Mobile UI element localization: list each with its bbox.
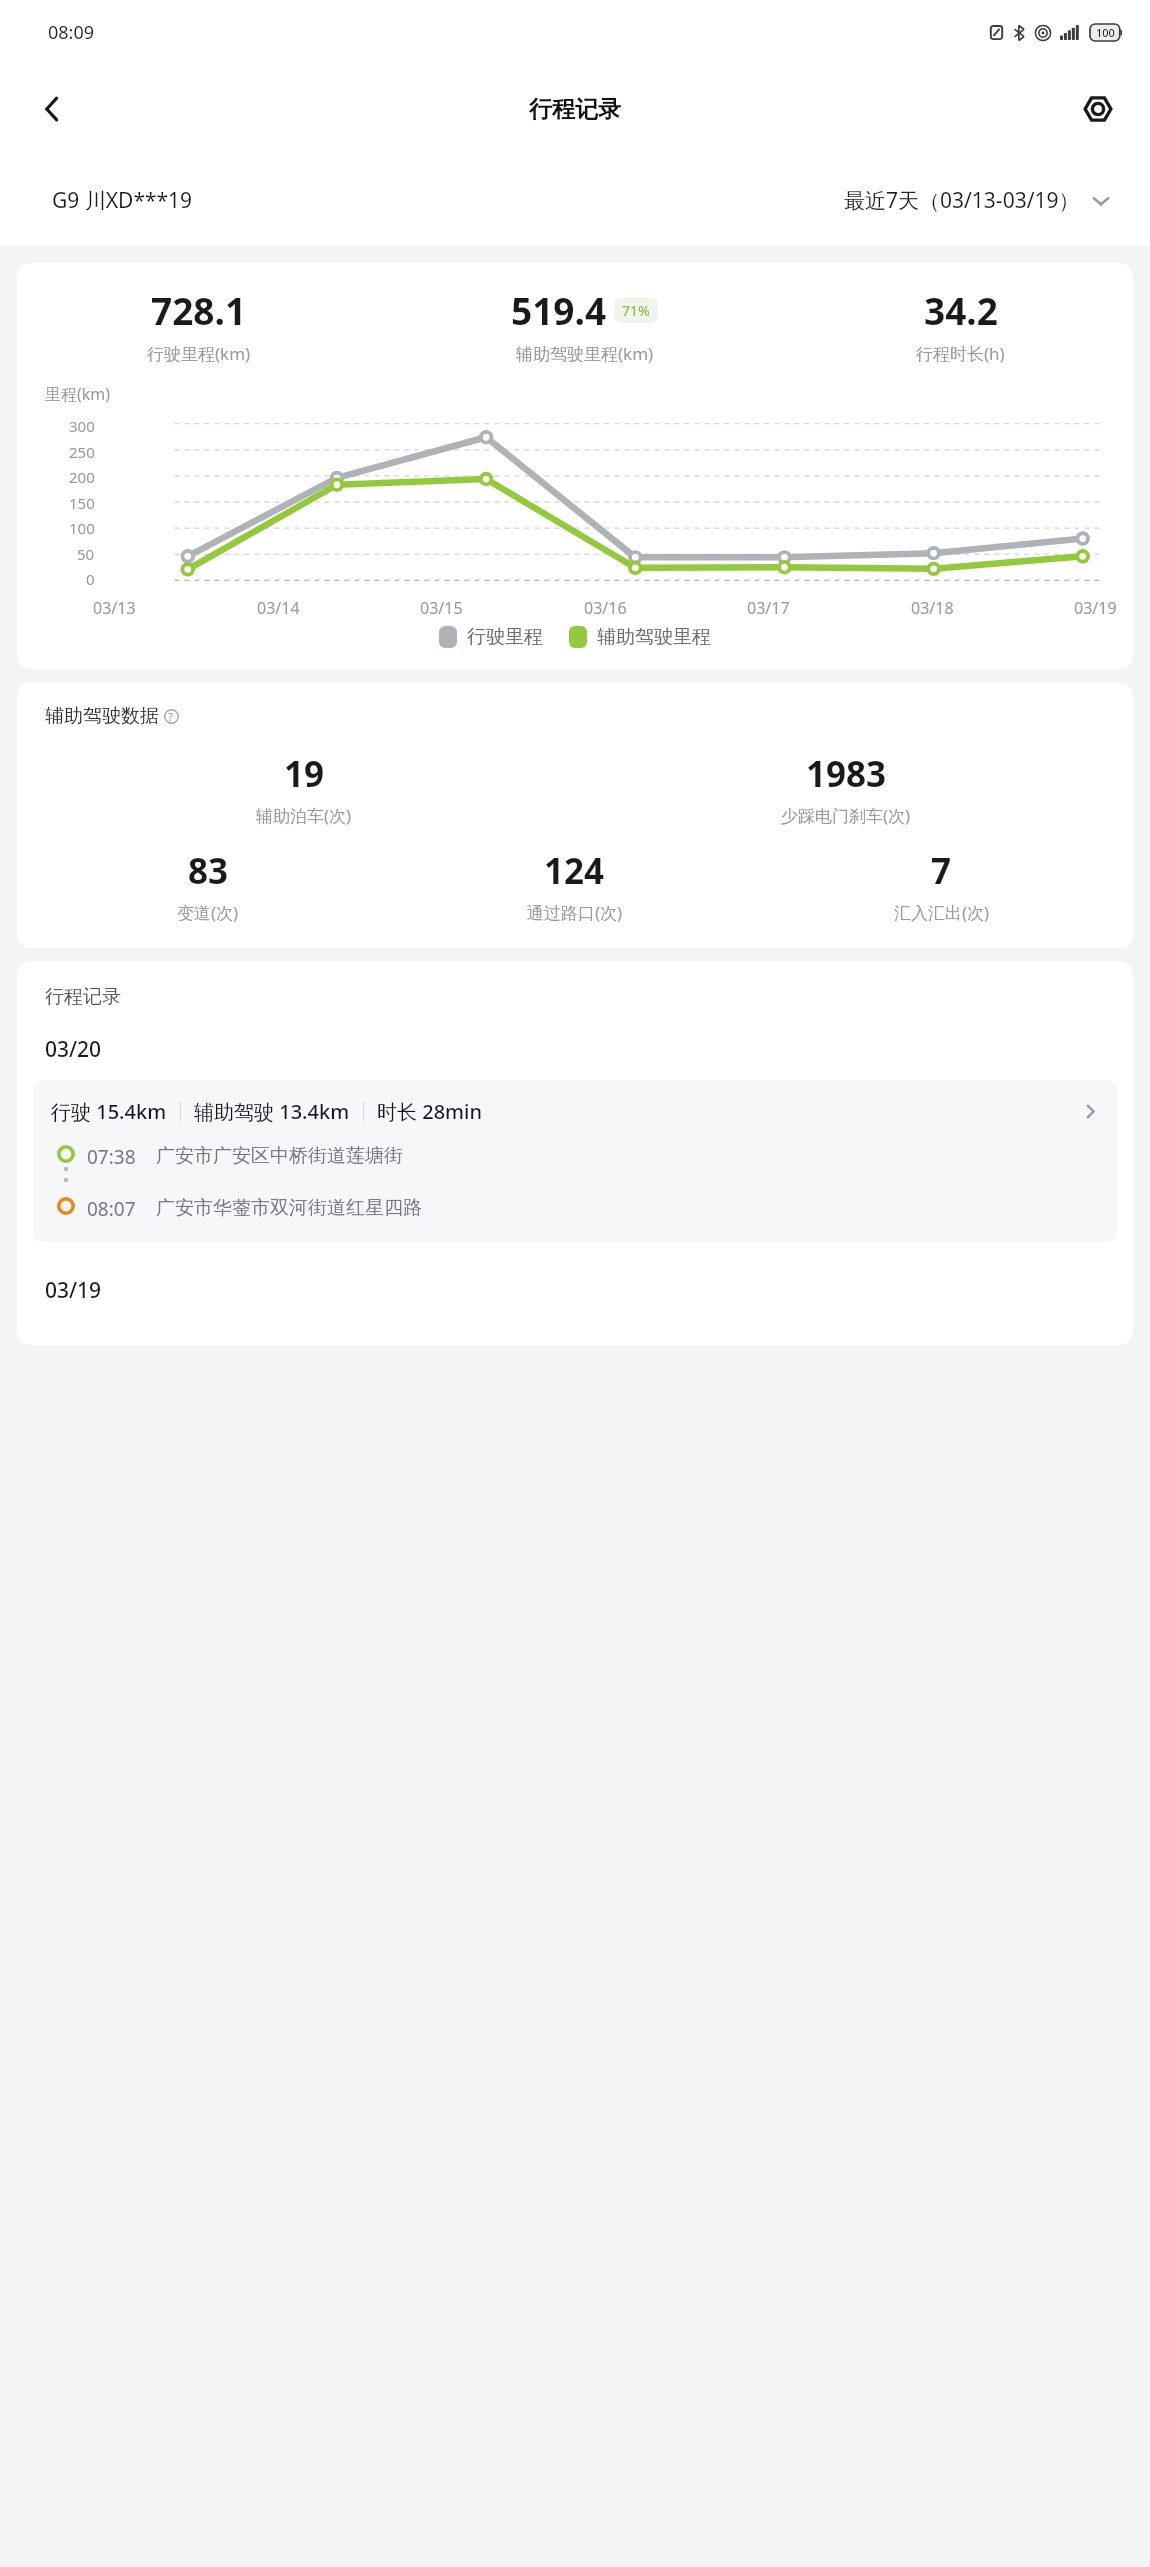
button[interactable]: Back bbox=[26, 83, 78, 135]
staticText: 71% bbox=[622, 301, 650, 320]
staticText: 辅助驾驶数据 bbox=[45, 704, 159, 728]
staticText: 124 bbox=[544, 847, 605, 895]
staticText: 汇入汇出(次) bbox=[894, 901, 990, 924]
staticText: 07:38 bbox=[87, 1144, 136, 1170]
staticText: 03/13 bbox=[93, 597, 136, 619]
staticText: 变道(次) bbox=[177, 901, 239, 924]
staticText: 200 bbox=[69, 467, 95, 487]
staticText: 03/17 bbox=[747, 597, 790, 619]
staticText: 7 bbox=[931, 847, 952, 895]
staticText: 行驶里程 bbox=[467, 625, 543, 649]
staticText: 300 bbox=[69, 416, 95, 436]
button[interactable]: 行驶 15.4km bbox=[33, 1080, 1117, 1242]
staticText: 34.2 bbox=[924, 285, 998, 335]
staticText: 辅助驾驶里程 bbox=[597, 625, 711, 649]
staticText: 行驶 15.4km bbox=[51, 1098, 167, 1125]
staticText: 时长 28min bbox=[377, 1098, 482, 1125]
button[interactable]: 辅助驾驶数据 bbox=[45, 704, 184, 728]
staticText: 行程时长(h) bbox=[916, 342, 1005, 365]
staticText: 08:09 bbox=[48, 20, 95, 45]
staticText: ? bbox=[168, 709, 173, 724]
staticText: 03/19 bbox=[1074, 597, 1117, 619]
staticText: 广安市华蓥市双河街道红星四路 bbox=[156, 1196, 422, 1220]
staticText: 83 bbox=[188, 847, 229, 895]
staticText: 最近7天（03/13-03/19） bbox=[844, 186, 1080, 215]
staticText: 0 bbox=[86, 569, 95, 589]
button[interactable]: 最近7天（03/13-03/19） bbox=[844, 186, 1110, 215]
staticText: 100 bbox=[1096, 25, 1115, 40]
staticText: 少踩电门刹车(次) bbox=[781, 804, 911, 827]
staticText: 行程记录 bbox=[529, 95, 621, 124]
staticText: 50 bbox=[77, 544, 95, 564]
staticText: 辅助驾驶里程(km) bbox=[516, 342, 654, 365]
staticText: 行程记录 bbox=[45, 985, 121, 1009]
staticText: 辅助驾驶 13.4km bbox=[194, 1098, 350, 1125]
button[interactable]: Settings bbox=[1072, 83, 1124, 135]
staticText: 03/19 bbox=[45, 1276, 102, 1305]
staticText: 100 bbox=[69, 518, 95, 538]
staticText: 行驶里程(km) bbox=[147, 342, 251, 365]
staticText: 辅助泊车(次) bbox=[256, 804, 352, 827]
staticText: 1983 bbox=[806, 750, 887, 798]
staticText: 08:07 bbox=[87, 1196, 136, 1222]
staticText: 03/20 bbox=[45, 1035, 102, 1064]
staticText: 广安市广安区中桥街道莲塘街 bbox=[156, 1144, 403, 1168]
staticText: 150 bbox=[69, 493, 95, 513]
staticText: 250 bbox=[69, 442, 95, 462]
staticText: 519.4 bbox=[511, 285, 607, 335]
staticText: 03/18 bbox=[911, 597, 954, 619]
staticText: 19 bbox=[284, 750, 325, 798]
staticText: 03/15 bbox=[420, 597, 463, 619]
button[interactable]: G9 川XD***19 bbox=[52, 186, 193, 215]
staticText: 03/14 bbox=[257, 597, 300, 619]
staticText: 728.1 bbox=[151, 285, 247, 335]
staticText: 里程(km) bbox=[45, 383, 111, 405]
staticText: 03/16 bbox=[584, 597, 627, 619]
staticText: 通过路口(次) bbox=[527, 901, 623, 924]
